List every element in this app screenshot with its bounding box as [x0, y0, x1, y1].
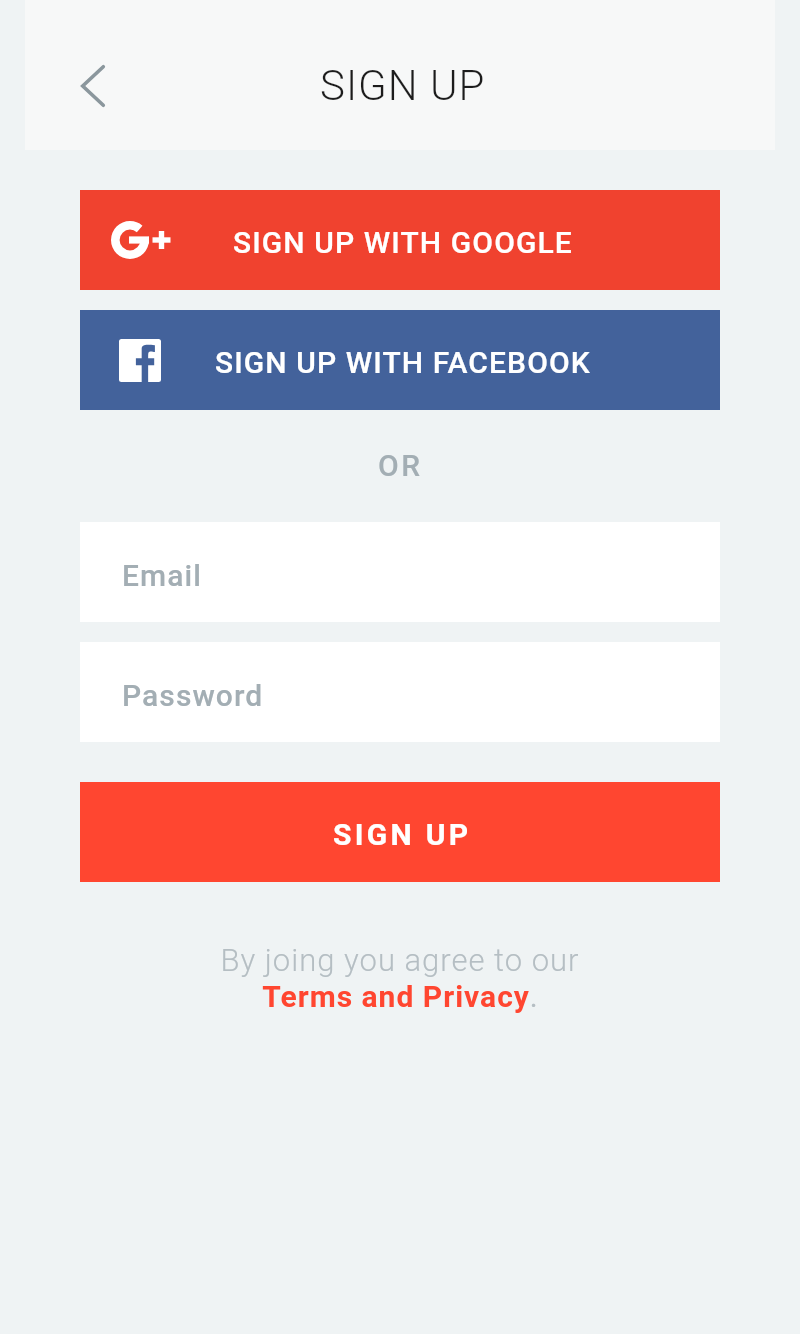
staticText: Password: [122, 678, 264, 713]
button[interactable]: Back: [65, 58, 121, 114]
staticText: SIGN UP WITH GOOGLE: [233, 225, 573, 260]
button[interactable]: Google: [80, 190, 720, 290]
button[interactable]: Email: [80, 522, 720, 622]
staticText: SIGN UP: [333, 817, 472, 852]
staticText: OR: [378, 448, 423, 483]
staticText: SIGN UP WITH FACEBOOK: [215, 345, 591, 380]
button[interactable]: Facebook: [80, 310, 720, 410]
staticText: Email: [122, 558, 202, 593]
button[interactable]: Terms and Privacy.: [262, 979, 538, 1014]
staticText: By joing you agree to our: [0, 942, 800, 978]
other: Facebook: [119, 339, 161, 382]
other: Google: [111, 220, 169, 260]
button[interactable]: SIGN UP: [80, 782, 720, 882]
staticText: SIGN UP: [320, 61, 486, 110]
button[interactable]: Password: [80, 642, 720, 742]
